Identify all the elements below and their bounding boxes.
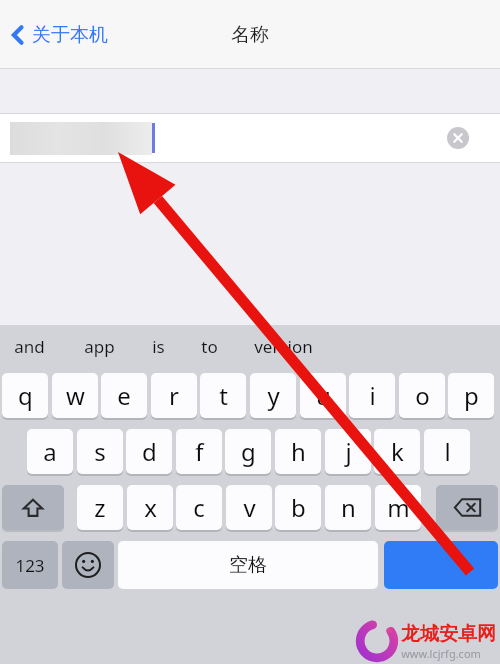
button[interactable]: c xyxy=(176,485,222,530)
staticText: app xyxy=(84,335,115,358)
button[interactable]: j xyxy=(325,429,371,474)
button[interactable]: h xyxy=(275,429,321,474)
staticText: is xyxy=(152,335,165,358)
button[interactable]: app xyxy=(82,331,117,362)
button[interactable]: v xyxy=(226,485,272,530)
button[interactable]: 退格 xyxy=(436,485,498,530)
button[interactable]: x xyxy=(127,485,173,530)
button[interactable]: version xyxy=(252,331,315,362)
button[interactable]: d xyxy=(126,429,172,474)
staticText: u xyxy=(316,379,331,412)
button[interactable]: b xyxy=(275,485,321,530)
button[interactable]: i xyxy=(349,373,395,418)
staticText: m xyxy=(387,491,410,524)
button[interactable]: 关于本机 xyxy=(10,22,108,48)
staticText: k xyxy=(391,435,404,468)
staticText: e xyxy=(117,379,131,412)
staticText: 龙城安卓网 xyxy=(401,622,496,646)
button[interactable]: 表情 xyxy=(62,541,114,589)
staticText: b xyxy=(291,491,306,524)
button[interactable]: 换行 xyxy=(384,541,498,589)
staticText: 空格 xyxy=(229,553,267,577)
staticText: t xyxy=(219,379,228,412)
button[interactable]: q xyxy=(2,373,48,418)
staticText: o xyxy=(415,379,430,412)
button[interactable]: m xyxy=(375,485,421,530)
button[interactable]: r xyxy=(151,373,197,418)
staticText: p xyxy=(464,379,479,412)
staticText: j xyxy=(345,435,352,468)
button[interactable]: t xyxy=(200,373,246,418)
staticText: g xyxy=(241,435,256,468)
button[interactable]: o xyxy=(399,373,445,418)
button[interactable]: k xyxy=(374,429,420,474)
staticText: www.lcjrfg.com xyxy=(401,646,481,661)
staticText: a xyxy=(43,435,57,468)
staticText: r xyxy=(169,379,179,412)
staticText: to xyxy=(201,335,218,358)
button[interactable]: is xyxy=(150,331,167,362)
staticText: y xyxy=(267,379,280,412)
button[interactable]: u xyxy=(300,373,346,418)
button[interactable]: 清除 xyxy=(0,113,500,163)
staticText: h xyxy=(291,435,306,468)
button[interactable]: w xyxy=(52,373,98,418)
staticText: d xyxy=(142,435,157,468)
button[interactable]: l xyxy=(424,429,470,474)
button[interactable]: 123 xyxy=(2,541,58,589)
button[interactable]: s xyxy=(77,429,123,474)
button[interactable]: 清除 xyxy=(445,125,471,151)
staticText: n xyxy=(341,491,356,524)
button[interactable]: to xyxy=(199,331,220,362)
staticText: q xyxy=(18,379,33,412)
staticText: 名称 xyxy=(231,23,269,47)
staticText: w xyxy=(66,379,85,412)
button[interactable]: Shift xyxy=(2,485,64,530)
button[interactable]: p xyxy=(448,373,494,418)
staticText: x xyxy=(144,491,157,524)
staticText: v xyxy=(243,491,256,524)
button[interactable]: f xyxy=(176,429,222,474)
staticText: l xyxy=(444,435,451,468)
staticText: and xyxy=(14,335,45,358)
button[interactable]: g xyxy=(225,429,271,474)
staticText: i xyxy=(369,379,376,412)
staticText: f xyxy=(195,435,204,468)
staticText: version xyxy=(254,335,313,358)
staticText: s xyxy=(94,435,106,468)
staticText: 123 xyxy=(15,554,45,577)
button[interactable]: z xyxy=(77,485,123,530)
staticText: c xyxy=(193,491,205,524)
button[interactable]: a xyxy=(27,429,73,474)
button[interactable]: n xyxy=(325,485,371,530)
button[interactable]: and xyxy=(12,331,47,362)
staticText: 关于本机 xyxy=(32,23,108,47)
button[interactable]: e xyxy=(101,373,147,418)
button[interactable]: y xyxy=(250,373,296,418)
staticText: z xyxy=(94,491,106,524)
button[interactable]: 空格 xyxy=(118,541,378,589)
